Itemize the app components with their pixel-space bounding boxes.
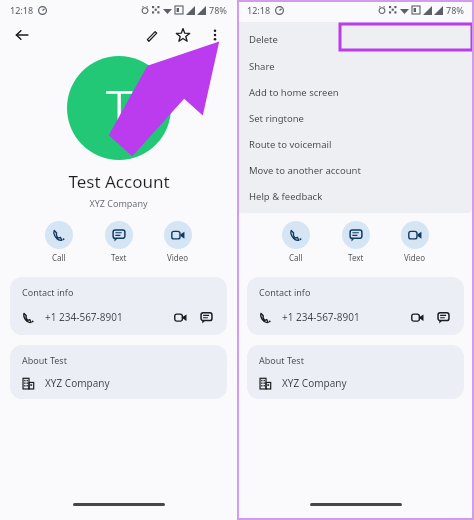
staticText: Set ringtone — [249, 112, 304, 125]
button[interactable]: Add to favorites — [408, 23, 432, 47]
staticText: 12:18 — [10, 4, 34, 16]
staticText: Add to home screen — [249, 86, 339, 99]
button[interactable]: Back — [247, 23, 271, 47]
button[interactable]: Delete — [237, 26, 472, 52]
button[interactable]: Call — [280, 219, 312, 265]
staticText: XYZ Company — [282, 376, 347, 390]
button[interactable]: Set ringtone — [237, 105, 472, 131]
staticText: XYZ Company — [89, 197, 148, 209]
button[interactable]: About Test — [10, 345, 227, 399]
button[interactable]: Contact info — [10, 277, 227, 335]
button[interactable]: About Test — [247, 345, 464, 399]
staticText: Video — [404, 252, 426, 263]
staticText: Share — [249, 60, 275, 73]
button[interactable]: Add to home screen — [237, 79, 472, 105]
button[interactable]: More options — [440, 23, 464, 47]
staticText: Delete — [249, 33, 278, 46]
staticText: Call — [52, 252, 66, 263]
button[interactable]: Add to favorites — [171, 23, 195, 47]
button[interactable]: Share — [237, 53, 472, 79]
button[interactable]: Video call — [408, 308, 426, 326]
button[interactable]: Text — [103, 219, 135, 265]
staticText: T — [106, 74, 133, 142]
button[interactable]: Contact info — [247, 277, 464, 335]
button[interactable]: Edit contact — [139, 23, 163, 47]
button[interactable]: Video — [399, 219, 431, 265]
button[interactable]: Video call — [171, 308, 189, 326]
staticText: Text — [111, 252, 127, 263]
staticText: Text — [348, 252, 364, 263]
staticText: About Test — [259, 354, 304, 366]
staticText: Contact info — [259, 286, 311, 298]
staticText: About Test — [22, 354, 67, 366]
button[interactable]: Move to another account — [237, 157, 472, 183]
staticText: Contact info — [22, 286, 74, 298]
staticText: Video — [167, 252, 189, 263]
button[interactable]: Route to voicemail — [237, 131, 472, 157]
staticText: +1 234-567-8901 — [45, 310, 123, 324]
button[interactable]: Help & feedback — [237, 183, 472, 209]
button[interactable]: Call — [43, 219, 75, 265]
button[interactable]: Send message — [434, 308, 452, 326]
button[interactable]: Back — [10, 23, 34, 47]
staticText: Test Account — [68, 170, 170, 193]
staticText: Help & feedback — [249, 190, 323, 203]
staticText: Call — [289, 252, 303, 263]
button[interactable]: Video — [162, 219, 194, 265]
staticText: Route to voicemail — [249, 138, 332, 151]
staticText: Test Account — [305, 170, 407, 193]
staticText: Move to another account — [249, 164, 361, 177]
button[interactable]: Edit contact — [376, 23, 400, 47]
staticText: 78% — [209, 4, 227, 16]
button[interactable]: More options — [203, 23, 227, 47]
button[interactable]: Send message — [197, 308, 215, 326]
staticText: +1 234-567-8901 — [282, 310, 360, 324]
staticText: 12:18 — [247, 4, 271, 16]
button[interactable]: Text — [340, 219, 372, 265]
staticText: XYZ Company — [45, 376, 110, 390]
staticText: 78% — [446, 4, 464, 16]
